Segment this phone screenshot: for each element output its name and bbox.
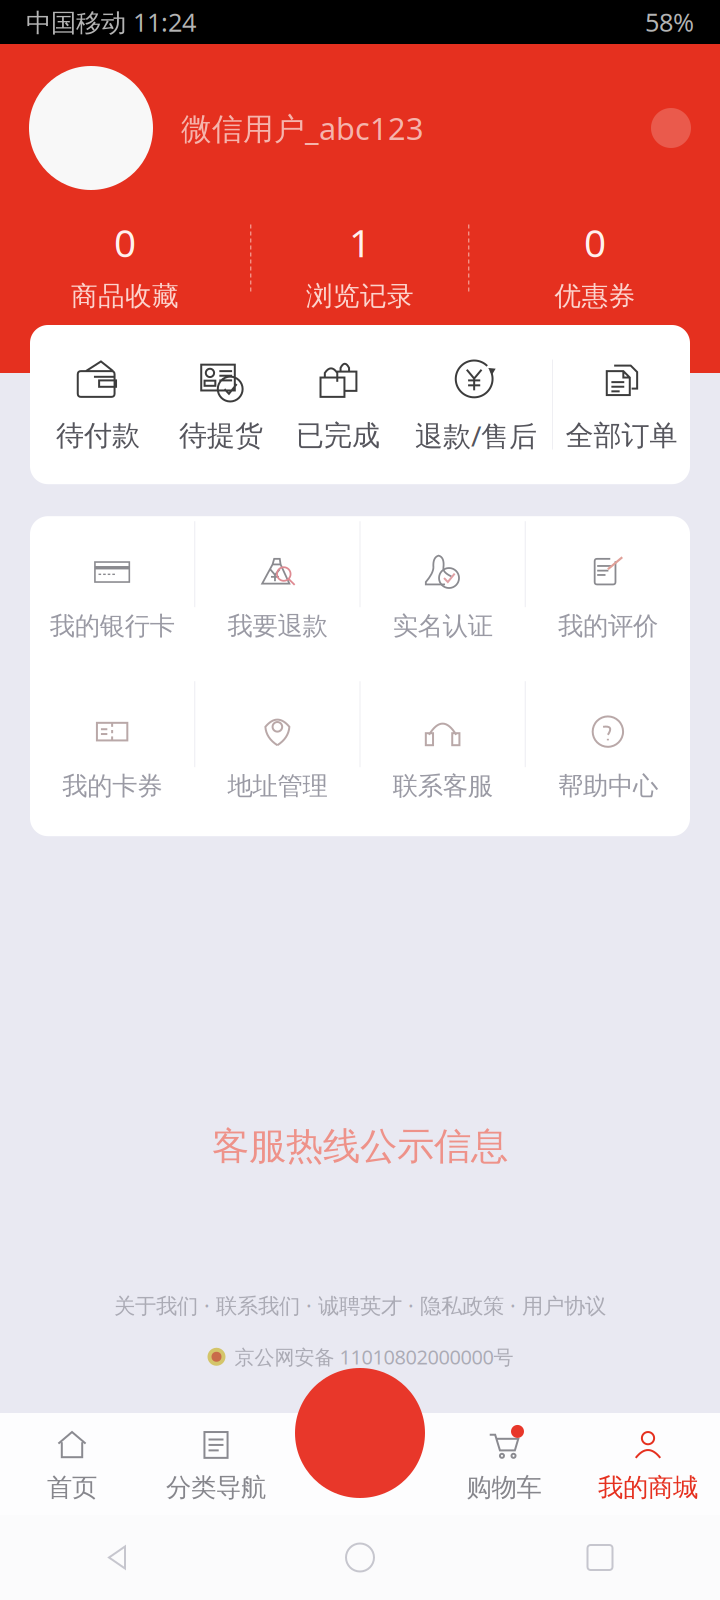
button[interactable]: 帮助中心 [526, 676, 690, 836]
staticText: 我的评价 [558, 611, 658, 642]
button[interactable]: 我的卡券 [30, 676, 194, 836]
button[interactable]: 1 [252, 204, 468, 312]
staticText: 首页 [47, 1472, 97, 1503]
button[interactable]: 实名认证 [360, 516, 525, 676]
staticText: 京公网安备 11010802000000号 [234, 1343, 513, 1370]
staticText: 0 [584, 216, 606, 268]
staticText: 0 [114, 216, 136, 268]
button[interactable]: 首页 [0, 1413, 144, 1515]
button[interactable]: 分类导航 [144, 1413, 288, 1515]
button[interactable]: 我的银行卡 [30, 516, 194, 676]
staticText: 关于我们 · 联系我们 · 诚聘英才 · 隐私政策 · 用户协议 [114, 1291, 606, 1319]
staticText: 微信用户_abc123 [181, 108, 424, 148]
button[interactable]: Home [346, 1543, 374, 1571]
button[interactable]: Back [105, 1542, 135, 1572]
button[interactable]: 退款/售后 [400, 355, 552, 454]
button[interactable]: 我的评价 [526, 516, 690, 676]
staticText: 地址管理 [227, 771, 327, 802]
staticText: 商品收藏 [71, 280, 179, 313]
staticText: 退款/售后 [415, 417, 537, 454]
staticText: 购物车 [466, 1472, 541, 1503]
button[interactable]: 全部订单 [553, 356, 690, 453]
staticText: 我要退款 [227, 611, 327, 642]
button[interactable]: Settings [651, 108, 691, 148]
button[interactable]: 我的商城 [576, 1413, 720, 1515]
staticText: 分类导航 [166, 1472, 266, 1503]
button[interactable]: 联系客服 [360, 676, 525, 836]
staticText: 帮助中心 [558, 771, 658, 802]
staticText: 优惠券 [554, 280, 635, 313]
button[interactable]: 我要退款 [195, 516, 359, 676]
staticText: 58% [645, 5, 694, 39]
button[interactable]: 待付款 [30, 356, 166, 453]
staticText: 浏览记录 [306, 280, 414, 313]
button[interactable]: 地址管理 [195, 676, 359, 836]
button[interactable]: 待提货 [166, 356, 276, 453]
staticText: 待提货 [179, 418, 263, 453]
staticText: 实名认证 [393, 611, 493, 642]
button[interactable]: Recents [587, 1545, 612, 1570]
button[interactable]: 0 [0, 204, 250, 312]
button[interactable]: 购物车 [432, 1413, 576, 1515]
staticText: 中国移动 11:24 [26, 5, 196, 39]
staticText: 我的卡券 [62, 771, 162, 802]
staticText: 待付款 [56, 418, 140, 453]
staticText: 我的银行卡 [50, 611, 175, 642]
button[interactable]: 0 [470, 204, 720, 312]
staticText: 联系客服 [393, 771, 493, 802]
button[interactable]: 已完成 [276, 356, 400, 453]
staticText: 1 [349, 216, 371, 268]
staticText: 我的商城 [598, 1472, 698, 1503]
staticText: 客服热线公示信息 [212, 1123, 508, 1169]
staticText: 已完成 [296, 418, 380, 453]
button[interactable]: Scan [295, 1368, 425, 1498]
staticText: 全部订单 [565, 418, 677, 453]
